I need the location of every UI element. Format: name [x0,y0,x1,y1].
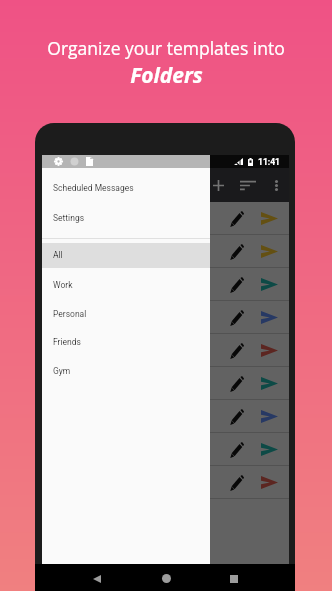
button[interactable]: Recent apps [220,568,248,590]
button[interactable] [42,268,289,301]
staticText: All [53,250,63,260]
button[interactable]: Sort [235,172,261,198]
button[interactable]: Settings [42,204,210,232]
button[interactable]: Back [83,568,111,590]
button[interactable] [42,301,289,334]
button[interactable]: All [42,242,210,268]
button[interactable] [42,466,289,499]
button[interactable]: New message [205,172,231,198]
staticText: Work [53,280,73,290]
staticText: Friends [53,337,81,347]
button[interactable]: Personal [42,299,210,328]
button[interactable] [42,202,289,235]
staticText: Personal [53,309,87,319]
button[interactable]: Home [152,567,180,589]
button[interactable] [42,400,289,433]
button[interactable]: Gym [42,356,210,385]
button[interactable] [42,235,289,268]
button[interactable]: More options [263,172,289,198]
button[interactable] [42,367,289,400]
staticText: Settings [53,213,85,223]
button[interactable] [42,334,289,367]
staticText: Organize your templates into [47,36,285,60]
staticText: Scheduled Messages [53,183,134,193]
button[interactable] [42,433,289,466]
staticText: Gym [53,366,71,376]
staticText: Folders [130,61,203,90]
staticText: 11:41 [258,157,280,167]
button[interactable]: Work [42,270,210,299]
button[interactable]: Friends [42,327,210,356]
button[interactable]: Scheduled Messages [42,174,210,202]
